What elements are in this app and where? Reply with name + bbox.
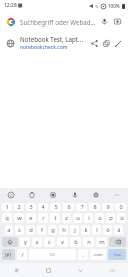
button[interactable]: n	[83, 237, 94, 247]
button[interactable]: Share	[88, 37, 100, 49]
staticText: ü	[120, 214, 124, 222]
staticText: l	[96, 226, 98, 234]
staticText: 9	[106, 203, 110, 211]
button[interactable]: Recents	[0, 263, 32, 277]
button[interactable]: k	[81, 225, 90, 235]
staticText: i	[88, 214, 90, 222]
staticText: 8	[93, 203, 97, 211]
button[interactable]: g	[48, 225, 57, 235]
button[interactable]: /	[17, 249, 27, 260]
button[interactable]: o	[95, 213, 104, 223]
button[interactable]: Voice search	[98, 15, 111, 28]
staticText: j	[74, 226, 76, 234]
staticText: u	[76, 214, 80, 222]
staticText: 6	[67, 203, 71, 211]
button[interactable]: Home	[32, 263, 64, 277]
staticText: Notebook Test, Lapt...	[20, 35, 84, 43]
button[interactable]: 4	[38, 203, 48, 211]
staticText: o	[98, 214, 102, 222]
button[interactable]: Space	[29, 249, 76, 260]
staticText: 12:28	[4, 2, 17, 9]
button[interactable]: Copy link	[100, 37, 112, 49]
button[interactable]: Notebook Test, Lapt...	[0, 32, 128, 54]
staticText: n	[87, 238, 91, 246]
staticText: d	[29, 226, 33, 234]
button[interactable]: 0	[115, 203, 126, 211]
button[interactable]: 8	[89, 203, 100, 211]
button[interactable]: s	[15, 225, 24, 235]
button[interactable]: m	[96, 237, 107, 247]
button[interactable]: q	[2, 213, 12, 223]
staticText: .	[82, 251, 84, 259]
button[interactable]: t	[50, 213, 60, 223]
button[interactable]: e	[26, 213, 36, 223]
button[interactable]: Backspace	[109, 237, 126, 247]
button[interactable]: l	[92, 225, 101, 235]
button[interactable]: y	[20, 237, 30, 247]
button[interactable]: 3	[26, 203, 36, 211]
button[interactable]: x	[32, 237, 42, 247]
button[interactable]: 2	[14, 203, 24, 211]
staticText: e	[29, 214, 33, 222]
button[interactable]: z	[62, 213, 71, 223]
button[interactable]: b	[70, 237, 81, 247]
button[interactable]: c	[44, 237, 55, 247]
button[interactable]: 5	[50, 203, 61, 211]
button[interactable]: ü	[117, 213, 126, 223]
button[interactable]: Google Lens	[111, 15, 124, 28]
staticText: r	[42, 214, 45, 222]
button[interactable]: ö	[103, 225, 112, 235]
staticText: y	[24, 238, 27, 246]
button[interactable]: 7	[76, 203, 87, 211]
button[interactable]: Suchbegriff oder Webadresse	[20, 18, 96, 26]
button[interactable]: .com	[90, 249, 106, 260]
button[interactable]: Voice input	[69, 189, 81, 201]
button[interactable]: Hide keyboard	[64, 263, 96, 277]
staticText: 2	[17, 203, 21, 211]
staticText: c	[48, 238, 51, 246]
button[interactable]: Clipboard	[26, 189, 38, 201]
staticText: .com	[93, 252, 103, 258]
button[interactable]: Settings	[90, 189, 102, 201]
button[interactable]: Edit query	[112, 37, 124, 49]
button[interactable]: Symbols	[2, 249, 15, 260]
staticText: t	[54, 214, 57, 222]
button[interactable]: 6	[63, 203, 74, 211]
button[interactable]: j	[70, 225, 79, 235]
staticText: ö	[106, 226, 110, 234]
staticText: a	[7, 226, 11, 234]
button[interactable]: a	[5, 225, 13, 235]
button[interactable]: h	[59, 225, 68, 235]
staticText: /	[21, 251, 24, 259]
button[interactable]: Go	[108, 249, 126, 260]
button[interactable]: More options	[111, 189, 123, 201]
button[interactable]: Emoji	[5, 189, 17, 201]
staticText: ä	[117, 226, 121, 234]
staticText: Los	[114, 252, 121, 258]
button[interactable]: Shift	[2, 237, 18, 247]
button[interactable]: f	[37, 225, 46, 235]
staticText: 100%	[108, 3, 120, 9]
staticText: Suchbegriff oder Webadresse	[20, 18, 96, 26]
button[interactable]: v	[57, 237, 68, 247]
staticText: 1	[5, 203, 9, 211]
staticText: s	[18, 226, 21, 234]
staticText: p	[109, 214, 113, 222]
button[interactable]: w	[14, 213, 24, 223]
button[interactable]: 1	[2, 203, 12, 211]
staticText: x	[35, 238, 39, 246]
staticText: 5	[54, 203, 58, 211]
staticText: notebookcheck.com	[20, 44, 68, 51]
button[interactable]: d	[26, 225, 35, 235]
button[interactable]: Google	[4, 15, 17, 28]
button[interactable]: i	[84, 213, 93, 223]
button[interactable]: ä	[114, 225, 123, 235]
button[interactable]: Switch keyboard	[96, 263, 128, 277]
button[interactable]: p	[106, 213, 115, 223]
button[interactable]: Stickers	[47, 189, 59, 201]
button[interactable]: .	[78, 249, 88, 260]
staticText: 0	[119, 203, 123, 211]
button[interactable]: r	[38, 213, 48, 223]
button[interactable]: u	[73, 213, 82, 223]
button[interactable]: 9	[102, 203, 113, 211]
